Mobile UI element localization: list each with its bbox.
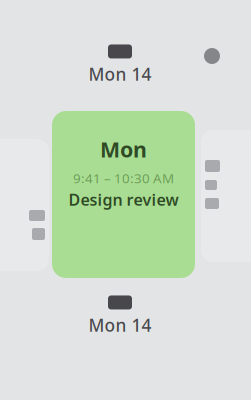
button[interactable]: Previous week [50, 47, 190, 83]
button[interactable]: Next day [201, 130, 251, 262]
staticText: Mon 14 [88, 62, 151, 85]
staticText: 9:41 – 10:30 AM [73, 169, 174, 187]
staticText: Mon [100, 135, 147, 163]
button[interactable]: Next week [50, 298, 190, 334]
staticText: Mon 14 [88, 313, 151, 336]
button[interactable]: Mon [52, 111, 195, 278]
staticText: Design review [68, 189, 178, 210]
button[interactable]: Profile [195, 39, 229, 73]
button[interactable]: Previous day [0, 139, 49, 271]
